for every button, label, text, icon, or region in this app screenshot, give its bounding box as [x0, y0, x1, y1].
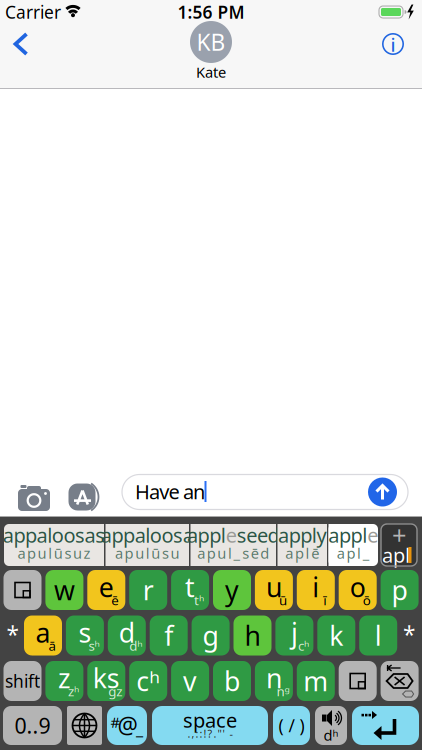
staticText: a: [35, 615, 50, 650]
button[interactable]: Back: [2, 22, 38, 66]
staticText: cʰ: [298, 637, 309, 654]
staticText: m: [303, 663, 328, 699]
button[interactable]: Info: [378, 29, 408, 59]
button[interactable]: Delete: [381, 661, 419, 701]
button[interactable]: Switch keyboard layout: [3, 570, 41, 610]
staticText: w: [54, 572, 75, 608]
button[interactable]: iMessage apps: [65, 480, 105, 514]
button[interactable]: u: [255, 570, 293, 610]
button[interactable]: Next keyboard: [67, 706, 102, 745]
staticText: appaloosas: [3, 522, 105, 548]
staticText: *: [6, 619, 18, 649]
button[interactable]: Have an: [122, 474, 408, 509]
button[interactable]: cʰ: [129, 661, 167, 701]
staticText: h: [244, 618, 260, 653]
staticText: +: [392, 518, 406, 552]
staticText: apply: [278, 522, 326, 548]
button[interactable]: appl: [190, 524, 276, 566]
staticText: .,::!?."' -: [187, 726, 232, 741]
staticText: dʰ: [323, 725, 338, 745]
button[interactable]: m: [297, 661, 335, 701]
staticText: aplē: [285, 543, 319, 563]
button[interactable]: e: [87, 570, 125, 610]
staticText: s: [78, 615, 91, 650]
button[interactable]: #: [107, 706, 147, 745]
button[interactable]: appaloosas: [4, 524, 104, 566]
staticText: g: [203, 618, 219, 653]
button[interactable]: h: [233, 615, 271, 655]
button[interactable]: g: [192, 615, 230, 655]
staticText: e: [99, 569, 114, 605]
button[interactable]: r: [129, 570, 167, 610]
button[interactable]: ks: [87, 661, 125, 701]
staticText: ō: [363, 591, 371, 609]
button[interactable]: y: [213, 570, 251, 610]
button[interactable]: apply: [277, 524, 327, 566]
button[interactable]: i: [297, 570, 335, 610]
button[interactable]: Kate: [187, 22, 235, 80]
button[interactable]: o: [339, 570, 377, 610]
staticText: Carrier: [5, 0, 61, 23]
staticText: p: [392, 572, 408, 608]
button[interactable]: z: [45, 661, 83, 701]
button[interactable]: k: [317, 615, 355, 655]
button[interactable]: 0..9: [3, 706, 62, 745]
staticText: apulūsu: [115, 543, 180, 563]
staticText: shift: [5, 669, 40, 692]
button[interactable]: s: [66, 615, 104, 655]
staticText: nᵍ: [276, 682, 289, 700]
staticText: v: [183, 663, 197, 699]
button[interactable]: Camera: [15, 481, 53, 511]
button[interactable]: n: [255, 661, 293, 701]
staticText: cʰ: [136, 663, 160, 699]
staticText: appl: [328, 522, 367, 548]
staticText: apulūsuz: [17, 543, 91, 563]
button[interactable]: ( / ): [273, 706, 310, 745]
staticText: r: [143, 572, 154, 608]
staticText: o: [350, 569, 366, 605]
staticText: zʰ: [68, 682, 79, 700]
button[interactable]: w: [45, 570, 83, 610]
staticText: i: [390, 32, 395, 57]
staticText: k: [329, 618, 343, 653]
button[interactable]: Add word: [381, 524, 417, 566]
button[interactable]: space: [152, 706, 268, 745]
staticText: e: [367, 522, 378, 548]
staticText: Kate: [196, 62, 226, 82]
staticText: gz: [108, 682, 122, 700]
button[interactable]: b: [213, 661, 251, 701]
staticText: 0..9: [14, 711, 50, 740]
staticText: KB: [196, 27, 225, 57]
staticText: l: [375, 618, 382, 653]
button[interactable]: p: [381, 570, 419, 610]
button[interactable]: Send: [367, 477, 397, 507]
staticText: appl: [187, 522, 226, 548]
staticText: ī: [323, 591, 326, 609]
staticText: appaloosa: [101, 522, 194, 548]
button[interactable]: Speak: [315, 706, 347, 745]
button[interactable]: t: [171, 570, 209, 610]
button[interactable]: v: [171, 661, 209, 701]
button[interactable]: appl: [328, 524, 378, 566]
staticText: 1:56 PM: [177, 0, 244, 23]
staticText: b: [224, 663, 240, 699]
staticText: u: [266, 569, 282, 605]
button[interactable]: d: [108, 615, 146, 655]
button[interactable]: f: [150, 615, 188, 655]
staticText: d: [119, 615, 135, 650]
button[interactable]: appaloosa: [105, 524, 189, 566]
staticText: z: [58, 660, 71, 696]
button[interactable]: j: [275, 615, 313, 655]
button[interactable]: Return: [352, 706, 419, 745]
button[interactable]: l: [359, 615, 397, 655]
button[interactable]: Switch keyboard layout: [339, 661, 377, 701]
staticText: ū: [279, 591, 287, 609]
staticText: space: [183, 707, 237, 733]
staticText: tʰ: [194, 591, 204, 609]
staticText: sʰ: [88, 637, 99, 654]
staticText: apl: [382, 542, 410, 568]
staticText: #: [110, 712, 119, 732]
button[interactable]: a: [24, 615, 62, 655]
staticText: t: [185, 569, 195, 605]
button[interactable]: shift: [3, 661, 41, 701]
